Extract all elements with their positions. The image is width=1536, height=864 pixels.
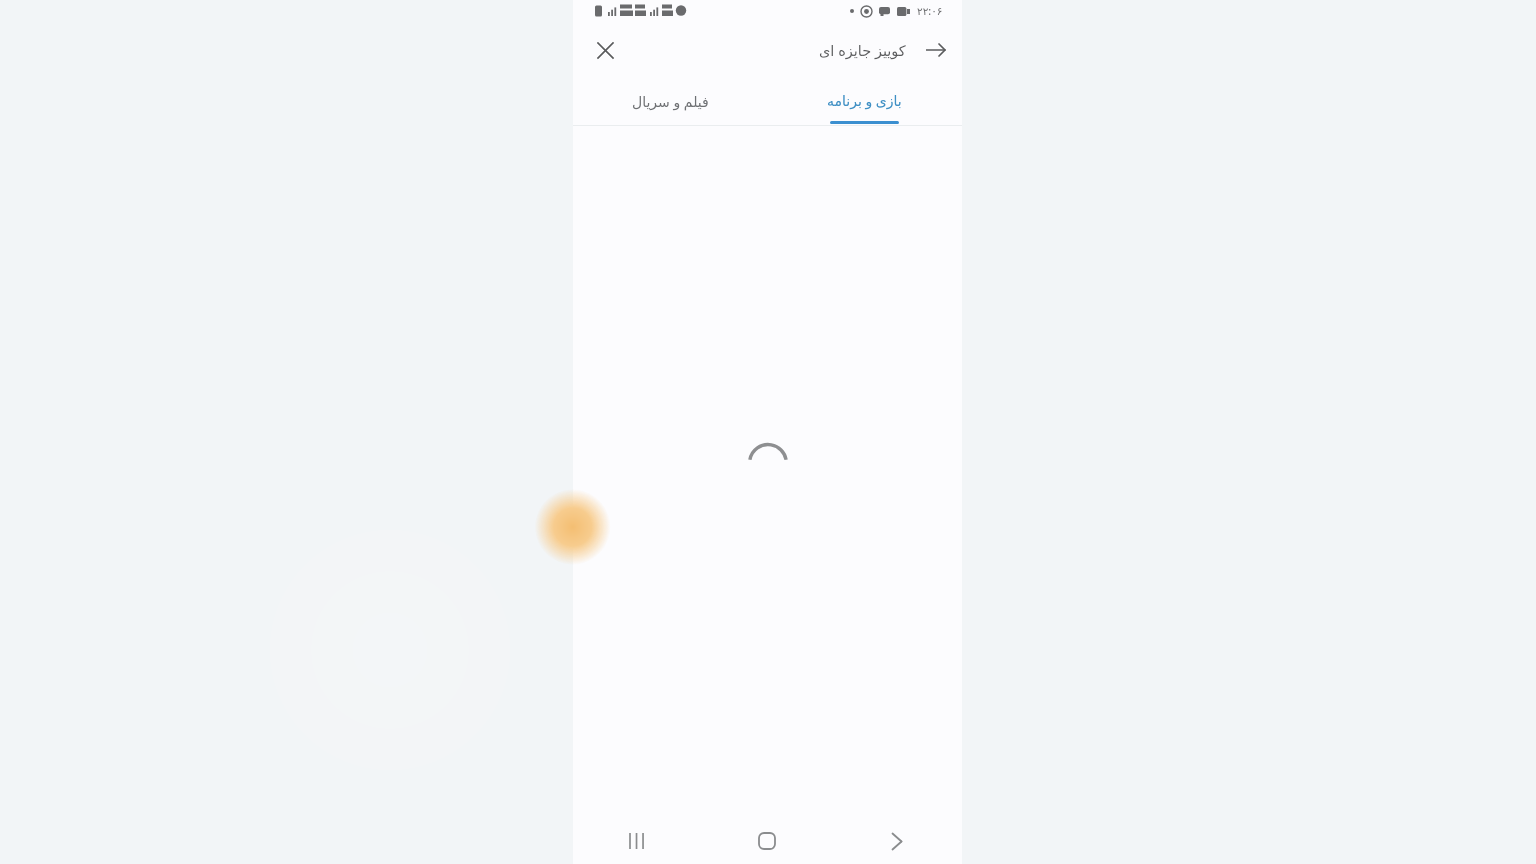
staticText: فیلم و سریال [632, 92, 709, 111]
staticText: کوییز جایزه ای [819, 40, 906, 60]
button[interactable]: Home [702, 818, 832, 864]
button[interactable]: بستن [585, 30, 625, 70]
button[interactable]: بازی و برنامه [767, 78, 962, 125]
staticText: بازی و برنامه [827, 91, 902, 110]
button[interactable]: فیلم و سریال [573, 78, 767, 125]
button[interactable]: Recents [573, 818, 702, 864]
button[interactable]: بعدی [915, 30, 955, 70]
staticText: ۲۲:۰۶ [917, 4, 943, 18]
button[interactable]: Back [832, 818, 962, 864]
